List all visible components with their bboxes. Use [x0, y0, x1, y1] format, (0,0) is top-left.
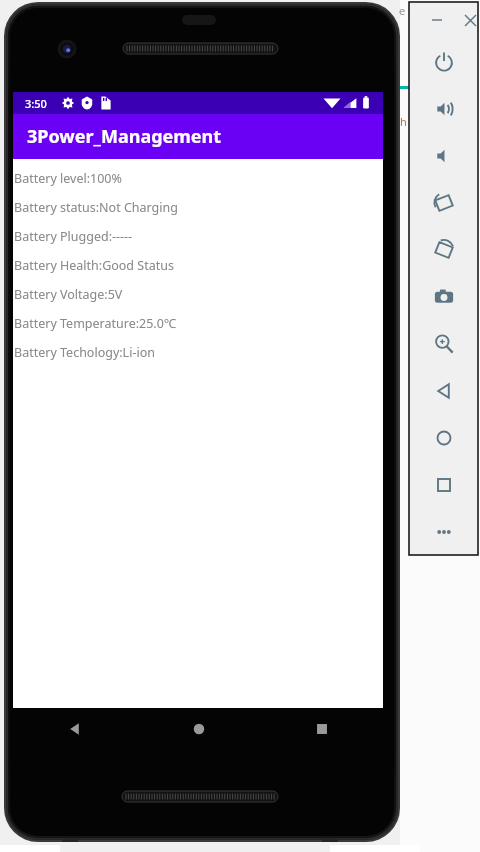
- button[interactable]: Overview: [409, 461, 478, 508]
- button[interactable]: Zoom: [409, 320, 478, 367]
- button[interactable]: Home: [409, 414, 478, 461]
- button[interactable]: Battery level:100%: [14, 164, 383, 193]
- button[interactable]: Take screenshot: [409, 273, 478, 320]
- button[interactable]: Recent apps: [260, 708, 383, 750]
- button[interactable]: Volume up: [409, 85, 478, 132]
- staticText: Battery Techology:Li-ion: [14, 344, 155, 361]
- button[interactable]: Back: [409, 367, 478, 414]
- button[interactable]: Battery Voltage:5V: [14, 280, 383, 309]
- staticText: Battery level:100%: [14, 170, 122, 187]
- staticText: Battery Health:Good Status: [14, 257, 174, 274]
- button[interactable]: Back: [13, 708, 137, 750]
- staticText: 3:50: [25, 96, 47, 111]
- button[interactable]: Home: [137, 708, 260, 750]
- button[interactable]: Close: [463, 10, 478, 30]
- staticText: 3Power_Management: [27, 124, 222, 149]
- button[interactable]: Battery Temperature:25.0℃: [14, 309, 383, 338]
- button[interactable]: Battery status:Not Charging: [14, 193, 383, 222]
- button[interactable]: Battery Techology:Li-ion: [14, 338, 383, 367]
- button[interactable]: Rotate left: [409, 179, 478, 226]
- button[interactable]: Battery Plugged:-----: [14, 222, 383, 251]
- button[interactable]: Battery Health:Good Status: [14, 251, 383, 280]
- staticText: h: [400, 114, 407, 129]
- staticText: Battery Voltage:5V: [14, 286, 123, 303]
- button[interactable]: Rotate right: [409, 226, 478, 273]
- staticText: Battery Temperature:25.0℃: [14, 315, 177, 332]
- staticText: Battery Plugged:-----: [14, 228, 133, 245]
- button[interactable]: More options: [409, 508, 478, 555]
- staticText: e le: [399, 3, 418, 18]
- button[interactable]: Power: [409, 38, 478, 85]
- button[interactable]: Minimize: [427, 10, 447, 30]
- staticText: Battery status:Not Charging: [14, 199, 178, 216]
- button[interactable]: Volume down: [409, 132, 478, 179]
